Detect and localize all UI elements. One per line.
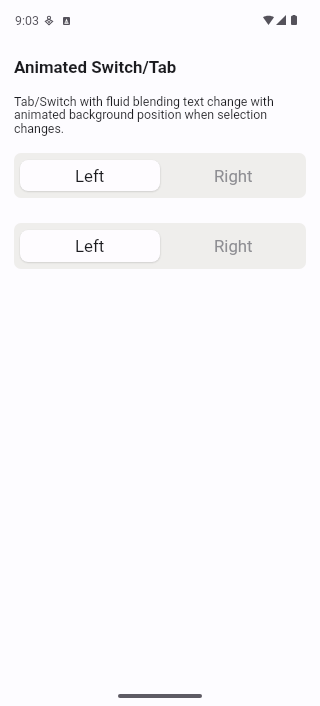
staticText: Animated Switch/Tab xyxy=(14,57,177,77)
button[interactable]: Right xyxy=(160,153,306,198)
button[interactable]: Left xyxy=(20,160,160,191)
other: App notification xyxy=(63,17,70,25)
staticText: Left xyxy=(75,166,105,186)
staticText: Left xyxy=(75,236,105,256)
staticText: Right xyxy=(214,236,253,256)
other: VPN active xyxy=(45,16,53,25)
button[interactable]: Right xyxy=(160,223,306,269)
staticText: Right xyxy=(214,166,253,186)
button[interactable]: Left xyxy=(20,230,160,262)
other: Mobile signal xyxy=(276,15,286,25)
staticText: 9:03 xyxy=(15,13,39,28)
staticText: Tab/Switch with fluid blending text chan… xyxy=(14,94,286,136)
other: Battery xyxy=(291,15,297,25)
other: Wi-Fi xyxy=(263,15,274,25)
